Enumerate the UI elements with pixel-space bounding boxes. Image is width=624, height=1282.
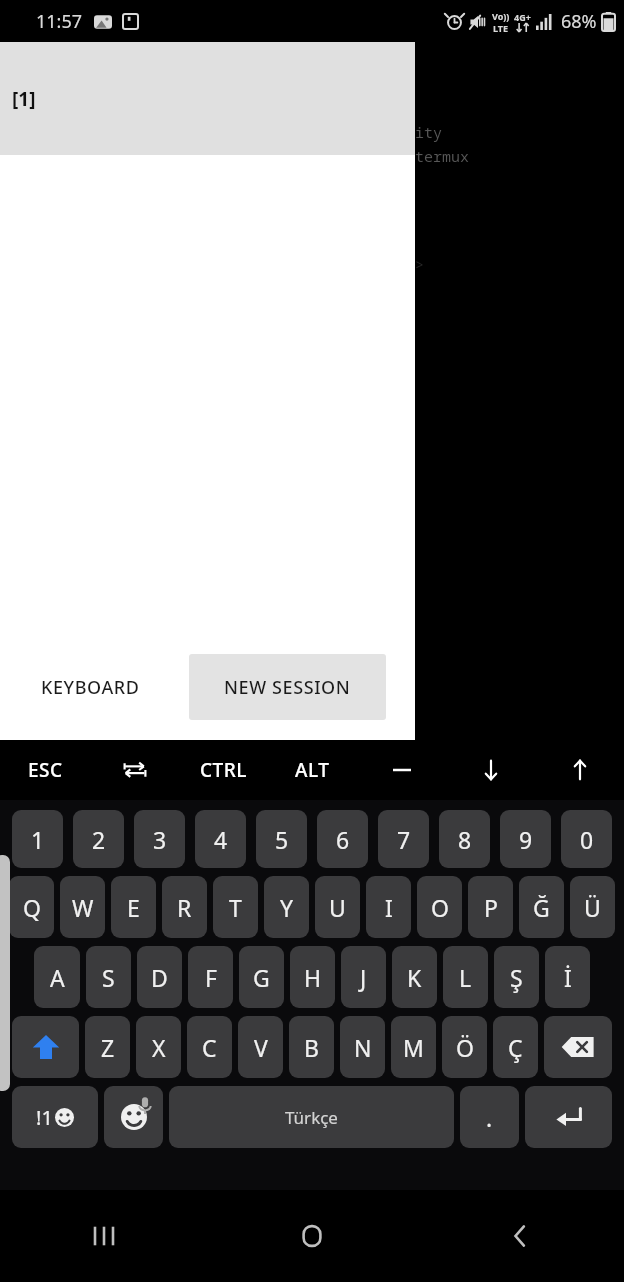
button[interactable]: Emoji and voice input (104, 1086, 163, 1148)
staticText: Ş (510, 962, 523, 993)
button[interactable]: L (443, 946, 488, 1008)
staticText: Ö (456, 1032, 474, 1063)
staticText: 8 (458, 824, 472, 855)
button[interactable]: J (341, 946, 386, 1008)
button[interactable]: C (187, 1016, 232, 1078)
button[interactable]: R (162, 876, 207, 938)
button[interactable]: 8 (439, 810, 490, 868)
button[interactable]: 1 (12, 810, 63, 868)
staticText: G (253, 962, 270, 993)
button[interactable]: G (239, 946, 284, 1008)
button[interactable]: Recents (0, 1190, 208, 1282)
button[interactable]: X (136, 1016, 181, 1078)
button[interactable]: 2 (73, 810, 124, 868)
staticText: KEYBOARD (41, 675, 140, 700)
staticText: M (403, 1032, 424, 1063)
button[interactable]: [1] (0, 42, 415, 155)
staticText: H (304, 962, 322, 993)
staticText: 4G+ (514, 11, 531, 23)
staticText: NEW SESSION (224, 675, 351, 700)
staticText: ESC (28, 757, 63, 783)
button[interactable]: 9 (500, 810, 551, 868)
button[interactable]: Ç (493, 1016, 538, 1078)
button[interactable]: N (340, 1016, 385, 1078)
button[interactable]: 4 (195, 810, 246, 868)
staticText: K (407, 962, 422, 993)
staticText: V (254, 1032, 268, 1063)
button[interactable]: K (392, 946, 437, 1008)
staticText: 0 (580, 824, 594, 855)
button[interactable]: Shift (12, 1016, 79, 1078)
button[interactable]: Z (85, 1016, 130, 1078)
staticText: R (177, 892, 192, 923)
button[interactable]: Ö (442, 1016, 487, 1078)
button[interactable]: F (188, 946, 233, 1008)
button[interactable]: 7 (378, 810, 429, 868)
button[interactable]: Backspace (544, 1016, 612, 1078)
button[interactable]: Home (208, 1190, 416, 1282)
button[interactable]: . (460, 1086, 519, 1148)
staticText: J (360, 962, 367, 993)
button[interactable]: DOWN (446, 740, 535, 800)
button[interactable]: P (468, 876, 513, 938)
button[interactable]: M (391, 1016, 436, 1078)
staticText: X (152, 1032, 166, 1063)
staticText: Vo)) (492, 10, 510, 22)
button[interactable]: H (290, 946, 335, 1008)
button[interactable]: W (60, 876, 105, 938)
button[interactable]: 3 (134, 810, 185, 868)
button[interactable]: Ğ (519, 876, 564, 938)
button[interactable]: Y (264, 876, 309, 938)
button[interactable]: ESC (0, 740, 90, 800)
button[interactable]: KEYBOARD (8, 659, 173, 716)
button[interactable]: 5 (256, 810, 307, 868)
button[interactable]: MINUS (357, 740, 446, 800)
staticText: N (354, 1032, 372, 1063)
button[interactable]: S (86, 946, 131, 1008)
button[interactable]: O (417, 876, 462, 938)
staticText: Ü (584, 892, 601, 923)
staticText: 3 (153, 824, 167, 855)
staticText: ity (415, 122, 443, 142)
staticText: 11:57 (36, 9, 83, 34)
button[interactable]: 0 (561, 810, 612, 868)
staticText: 9 (519, 824, 533, 855)
staticText: 5 (275, 824, 289, 855)
staticText: L (459, 962, 472, 993)
button[interactable]: E (111, 876, 156, 938)
button[interactable]: ALT (268, 740, 357, 800)
button[interactable]: CTRL (179, 740, 268, 800)
button[interactable]: UP (535, 740, 624, 800)
button[interactable]: 6 (317, 810, 368, 868)
button[interactable]: D (137, 946, 182, 1008)
staticText: CTRL (200, 757, 247, 783)
staticText: LTE (493, 22, 509, 34)
staticText: P (484, 892, 498, 923)
button[interactable]: U (315, 876, 360, 938)
button[interactable]: T (213, 876, 258, 938)
staticText: I (385, 892, 393, 923)
button[interactable]: Q (9, 876, 54, 938)
staticText: Y (280, 892, 294, 923)
button[interactable]: V (238, 1016, 283, 1078)
button[interactable]: Ü (570, 876, 615, 938)
button[interactable]: !1 (12, 1086, 98, 1148)
button[interactable]: Back (416, 1190, 624, 1282)
button[interactable]: I (366, 876, 411, 938)
button[interactable]: İ (545, 946, 590, 1008)
staticText: [1] (12, 86, 36, 112)
button[interactable]: NEW SESSION (189, 654, 386, 720)
button[interactable]: Enter (525, 1086, 612, 1148)
button[interactable]: Türkçe (169, 1086, 454, 1148)
staticText: D (151, 962, 168, 993)
staticText: S (102, 962, 115, 993)
staticText: U (329, 892, 346, 923)
staticText: 6 (336, 824, 350, 855)
staticText: ALT (295, 757, 330, 783)
button[interactable]: TAB (90, 740, 179, 800)
button[interactable]: Ş (494, 946, 539, 1008)
staticText: T (229, 892, 242, 923)
button[interactable]: A (34, 946, 80, 1008)
staticText: 1 (31, 824, 45, 855)
button[interactable]: B (289, 1016, 334, 1078)
